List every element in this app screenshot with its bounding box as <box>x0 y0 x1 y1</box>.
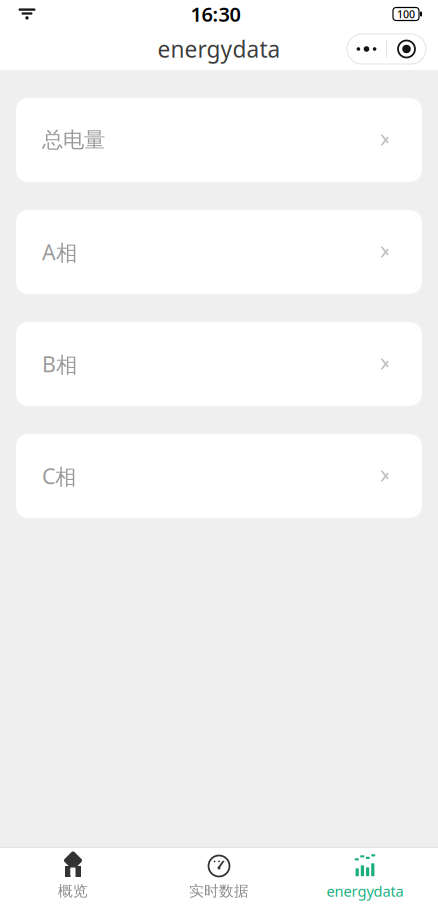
staticText: C相 <box>42 462 76 490</box>
staticText: energydata <box>157 34 280 64</box>
button[interactable]: 概览 <box>0 848 146 906</box>
button[interactable]: 实时数据 <box>146 848 292 906</box>
staticText: 总电量 <box>42 127 105 153</box>
button[interactable]: Close <box>387 34 426 64</box>
staticText: 100 <box>397 7 415 21</box>
staticText: 实时数据 <box>189 882 249 900</box>
button[interactable]: B相 <box>16 322 422 406</box>
staticText: energydata <box>326 881 403 901</box>
staticText: B相 <box>42 350 77 378</box>
button[interactable]: C相 <box>16 434 422 518</box>
staticText: 概览 <box>58 882 88 900</box>
button[interactable]: More <box>347 34 386 64</box>
button[interactable]: energydata <box>292 848 438 906</box>
staticText: 16:30 <box>190 1 240 27</box>
button[interactable]: 总电量 <box>16 98 422 182</box>
button[interactable]: A相 <box>16 210 422 294</box>
staticText: A相 <box>42 238 77 266</box>
